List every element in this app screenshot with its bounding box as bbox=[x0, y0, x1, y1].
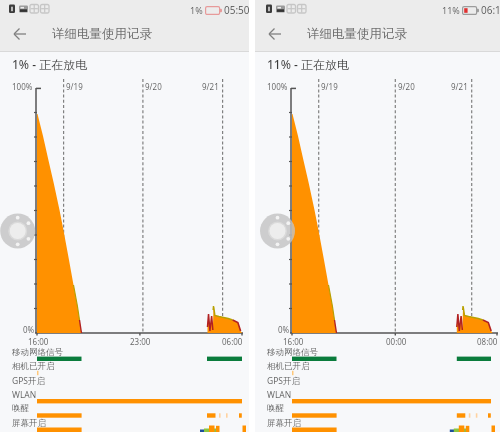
staticText: 16:00 bbox=[28, 336, 49, 347]
staticText: 1% - 正在放电 bbox=[12, 56, 88, 72]
staticText: 11% - 正在放电 bbox=[267, 56, 350, 72]
staticText: 9/20 bbox=[145, 81, 162, 92]
staticText: 相机已开启 bbox=[267, 361, 310, 372]
staticText: 屏幕开启 bbox=[12, 418, 46, 429]
button[interactable]: 移动网络信号 bbox=[0, 346, 249, 360]
staticText: 详细电量使用记录 bbox=[307, 26, 407, 42]
button[interactable]: Back bbox=[263, 22, 287, 46]
staticText: 屏幕开启 bbox=[267, 418, 301, 429]
staticText: 9/21 bbox=[451, 81, 468, 92]
staticText: 23:00 bbox=[130, 336, 151, 347]
staticText: 06:10 bbox=[481, 3, 500, 17]
button[interactable]: GPS开启 bbox=[255, 374, 500, 388]
staticText: 唤醒 bbox=[12, 403, 29, 414]
staticText: GPS开启 bbox=[267, 375, 300, 387]
staticText: 1% bbox=[190, 4, 203, 16]
button[interactable]: 屏幕开启 bbox=[255, 417, 500, 431]
staticText: 05:50 bbox=[224, 3, 250, 17]
button[interactable]: 唤醒 bbox=[0, 402, 249, 416]
staticText: 9/20 bbox=[398, 81, 415, 92]
button[interactable]: GPS开启 bbox=[0, 374, 249, 388]
staticText: 06:00 bbox=[222, 336, 243, 347]
staticText: 移动网络信号 bbox=[267, 347, 318, 358]
button[interactable]: WLAN bbox=[255, 388, 500, 402]
staticText: GPS开启 bbox=[12, 375, 45, 387]
staticText: 100% bbox=[12, 81, 33, 92]
staticText: 9/19 bbox=[66, 81, 83, 92]
staticText: 100% bbox=[267, 81, 288, 92]
staticText: WLAN bbox=[267, 389, 292, 401]
staticText: 9/21 bbox=[202, 81, 219, 92]
button[interactable]: Back bbox=[8, 22, 32, 46]
staticText: 移动网络信号 bbox=[12, 347, 63, 358]
staticText: 16:00 bbox=[283, 336, 304, 347]
staticText: 08:00 bbox=[477, 336, 498, 347]
button[interactable]: 屏幕开启 bbox=[0, 417, 249, 431]
staticText: 9/19 bbox=[321, 81, 338, 92]
button[interactable]: 相机已开启 bbox=[255, 360, 500, 374]
staticText: 11% bbox=[442, 4, 460, 16]
staticText: 00:00 bbox=[386, 336, 407, 347]
staticText: 唤醒 bbox=[267, 403, 284, 414]
staticText: 0% bbox=[23, 324, 35, 335]
button[interactable]: 唤醒 bbox=[255, 402, 500, 416]
button[interactable]: 相机已开启 bbox=[0, 360, 249, 374]
staticText: 详细电量使用记录 bbox=[52, 26, 152, 42]
button[interactable]: 移动网络信号 bbox=[255, 346, 500, 360]
button[interactable]: WLAN bbox=[0, 388, 249, 402]
staticText: 相机已开启 bbox=[12, 361, 55, 372]
staticText: WLAN bbox=[12, 389, 37, 401]
staticText: 0% bbox=[278, 324, 290, 335]
